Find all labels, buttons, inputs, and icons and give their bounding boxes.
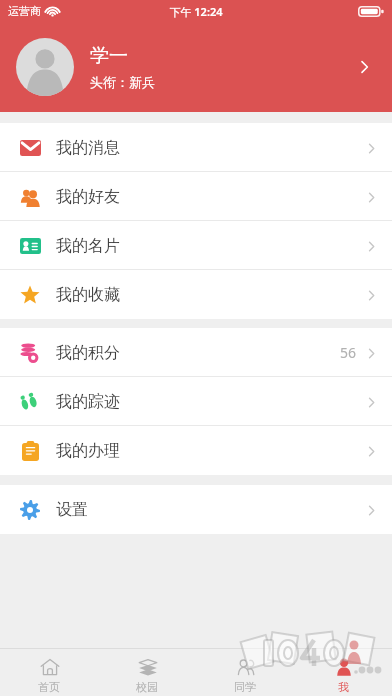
staticText: 运营商: [8, 4, 41, 18]
staticText: 我的踪迹: [56, 392, 120, 412]
button[interactable]: 我的踪迹: [0, 377, 392, 426]
staticText: 我的积分: [56, 343, 120, 363]
button[interactable]: 校园: [98, 651, 196, 694]
staticText: 头衔：新兵: [90, 74, 155, 90]
button[interactable]: 我的积分: [0, 328, 392, 377]
staticText: 我的好友: [56, 187, 120, 207]
button[interactable]: 同学: [196, 651, 294, 694]
other: Profile details: [350, 53, 378, 81]
staticText: 我的收藏: [56, 285, 120, 305]
button[interactable]: 首页: [0, 651, 98, 694]
button[interactable]: 设置: [0, 485, 392, 534]
staticText: 我的办理: [56, 441, 120, 461]
button[interactable]: 我的办理: [0, 426, 392, 475]
staticText: 设置: [56, 500, 88, 520]
button[interactable]: 我的名片: [0, 221, 392, 270]
staticText: 我: [338, 680, 349, 694]
staticText: 首页: [38, 680, 60, 694]
staticText: 56: [340, 343, 357, 362]
button[interactable]: 我的消息: [0, 123, 392, 172]
staticText: 学一: [90, 44, 128, 68]
staticText: 我的名片: [56, 236, 120, 256]
button[interactable]: 我: [294, 651, 392, 694]
staticText: 下午 12:24: [169, 4, 223, 19]
staticText: 同学: [234, 680, 256, 694]
staticText: 校园: [136, 680, 158, 694]
staticText: 我的消息: [56, 138, 120, 158]
button[interactable]: 学一: [0, 22, 392, 112]
button[interactable]: 我的收藏: [0, 270, 392, 319]
button[interactable]: 我的好友: [0, 172, 392, 221]
